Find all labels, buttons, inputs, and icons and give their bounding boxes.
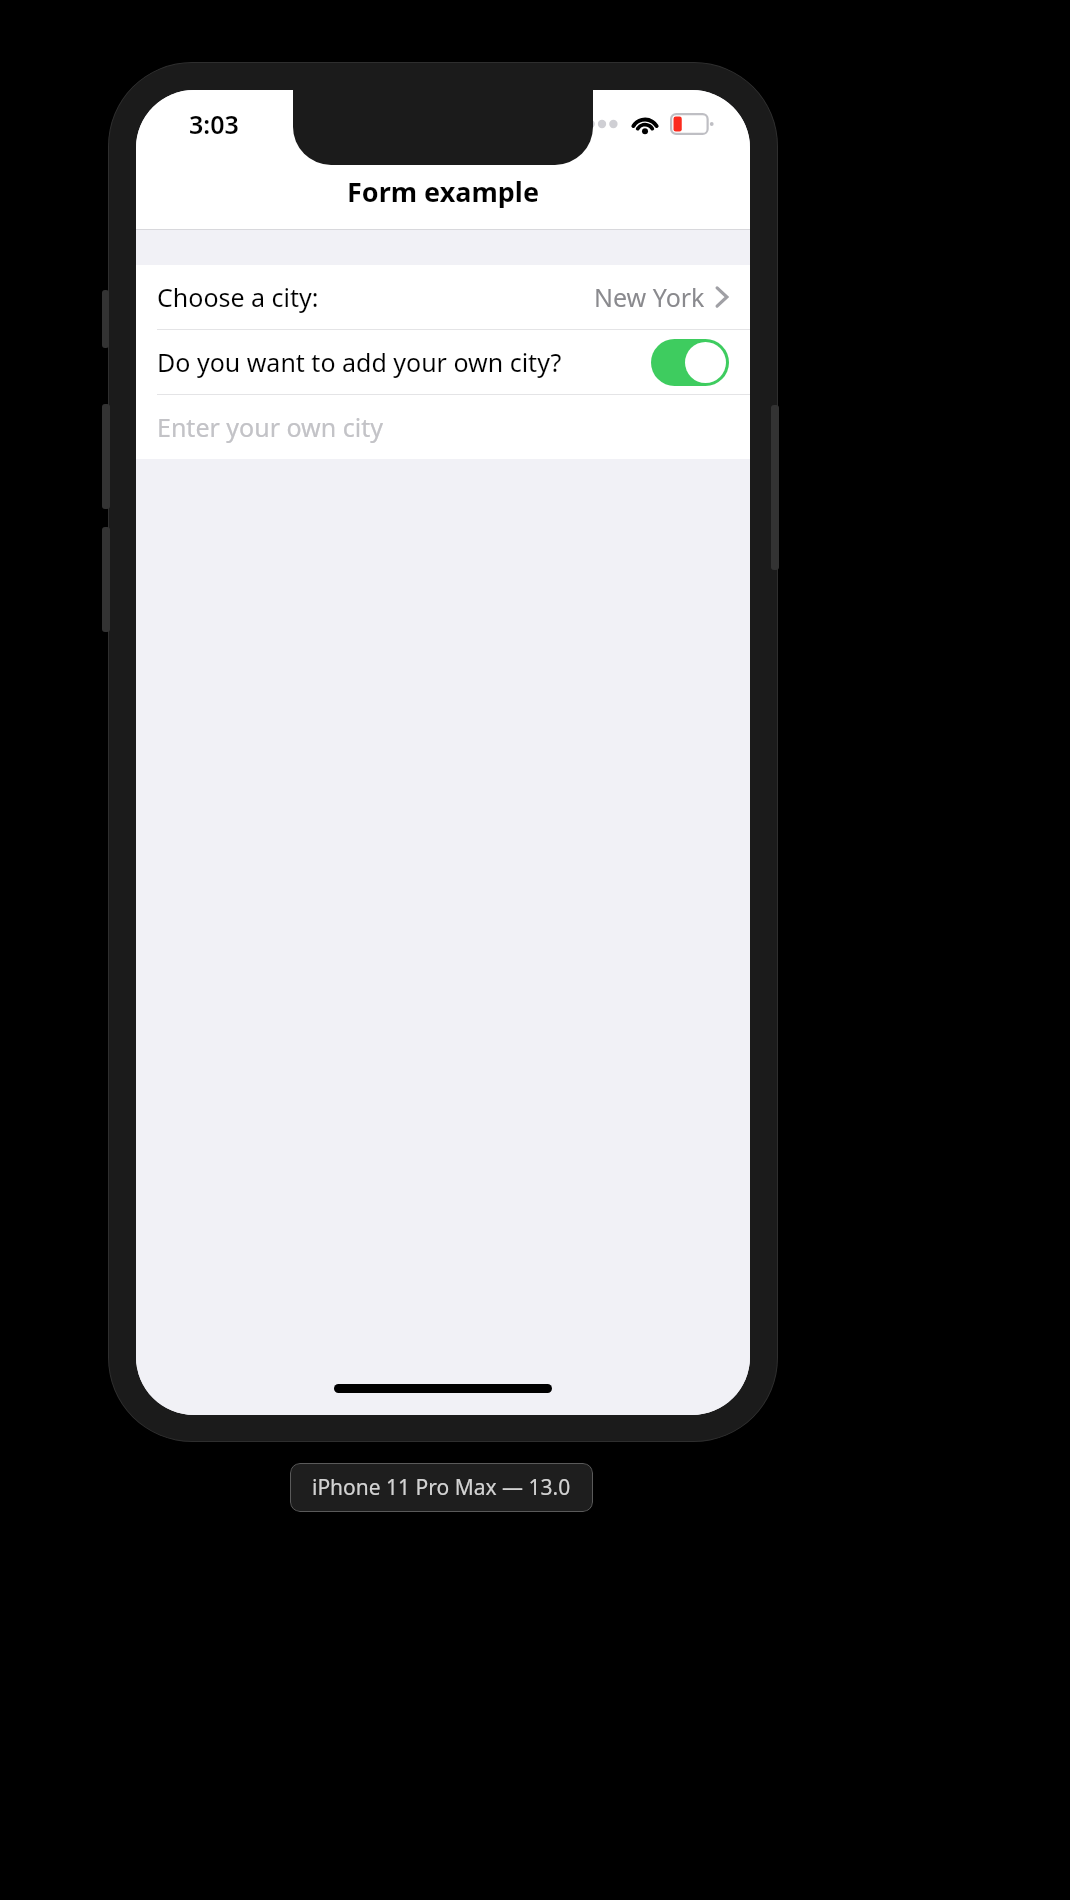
- staticText: Enter your own city: [157, 410, 383, 444]
- staticText: Choose a city:: [157, 280, 319, 314]
- staticText: Form example: [347, 173, 540, 210]
- button[interactable]: Enter your own city: [136, 395, 750, 459]
- staticText: Do you want to add your own city?: [157, 345, 562, 379]
- staticText: New York: [594, 280, 705, 314]
- staticText: 3:03: [189, 107, 239, 141]
- button[interactable]: iPhone 11 Pro Max — 13.0: [290, 1463, 593, 1512]
- button[interactable]: Add your own city toggle: [651, 339, 729, 386]
- button[interactable]: Choose a city:: [136, 265, 750, 329]
- staticText: iPhone 11 Pro Max — 13.0: [312, 1473, 571, 1502]
- button[interactable]: Do you want to add your own city?: [136, 330, 750, 394]
